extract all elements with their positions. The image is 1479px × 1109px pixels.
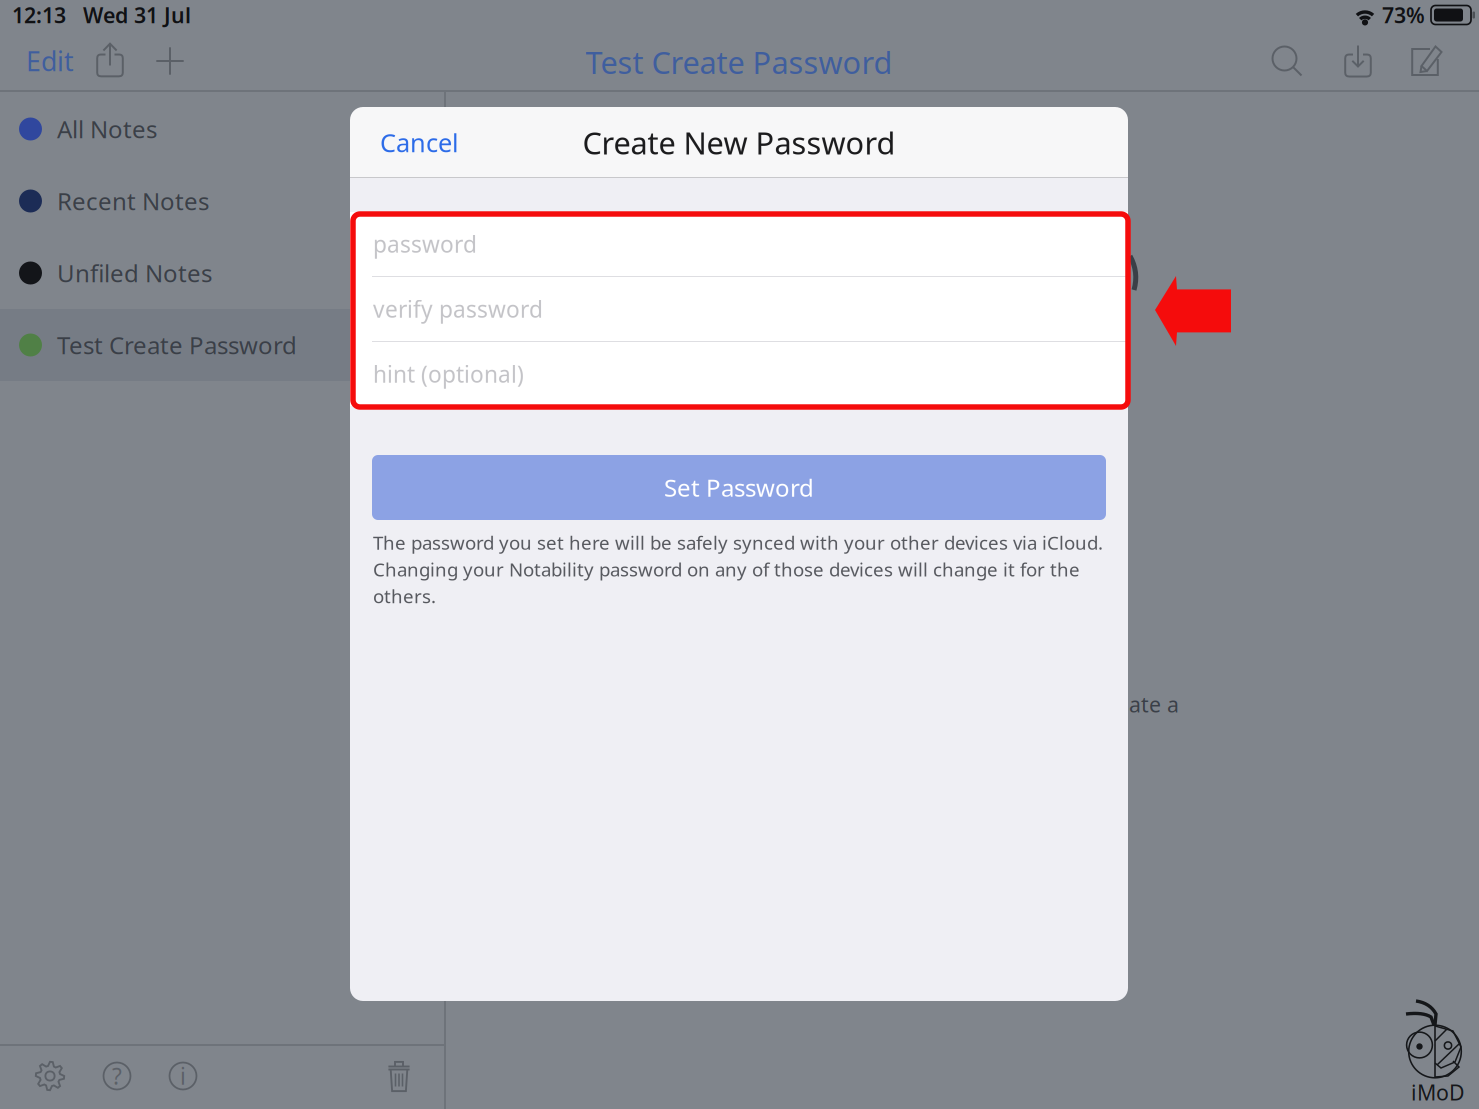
button[interactable]: Unfiled Notes [0,237,444,309]
button[interactable]: Search [1261,33,1313,89]
button[interactable]: Test Create Password [0,309,444,381]
button[interactable]: All Notes [0,93,444,165]
staticText: The password you set here will be safely… [373,530,1103,555]
staticText: password [373,229,477,259]
staticText: Create New Password [582,122,895,163]
staticText: ate a [1129,690,1179,718]
button[interactable]: Edit [15,33,85,89]
staticText: Cancel [380,126,459,159]
staticText: ? [112,1061,122,1091]
staticText: hint (optional) [373,359,524,389]
staticText: 73% [1382,1,1425,29]
staticText: verify password [373,294,543,324]
button[interactable]: Delete [375,1052,423,1100]
staticText: 12:13 [12,1,66,29]
button[interactable]: Cancel [370,107,469,178]
staticText: Edit [26,43,74,79]
staticText: Unfiled Notes [57,257,212,289]
button[interactable]: Test Create Password [539,37,939,87]
staticText: All Notes [57,113,157,145]
button[interactable]: Import [1332,33,1384,89]
button[interactable]: New Note [144,33,196,89]
button[interactable]: Settings [26,1052,74,1100]
staticText: Set Password [664,472,814,503]
staticText: Changing your Notability password on any… [373,557,1080,582]
button[interactable]: Set Password [372,455,1106,520]
button[interactable]: Info [159,1052,207,1100]
staticText: Wed 31 Jul [83,1,191,29]
staticText: Test Create Password [57,329,297,361]
staticText: Recent Notes [57,185,209,217]
staticText: others. [373,584,436,608]
button[interactable]: Help [93,1052,141,1100]
staticText: i [180,1061,186,1091]
staticText: Test Create Password [585,42,892,82]
button[interactable]: Share [84,32,136,88]
button[interactable]: Compose [1401,33,1453,89]
staticText: iMoD [1411,1078,1465,1106]
button[interactable]: Recent Notes [0,165,444,237]
